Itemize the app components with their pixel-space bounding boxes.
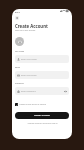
- button[interactable]: Enter your email: [15, 71, 69, 79]
- staticText: Password: [15, 82, 24, 85]
- button[interactable]: Add profile photo: [15, 37, 24, 46]
- staticText: Email: [15, 66, 20, 69]
- button[interactable]: Create Account: [15, 112, 69, 119]
- staticText: Full Name: [15, 50, 25, 53]
- staticText: Create Account: [34, 114, 50, 117]
- button[interactable]: Enter password: [15, 87, 69, 95]
- staticText: Enter your name: [21, 58, 37, 61]
- staticText: Sign up to get started: [15, 29, 36, 32]
- staticText: Already have an account? Log in: [27, 122, 58, 125]
- staticText: Create Account: [15, 23, 48, 29]
- button[interactable]: Back: [15, 16, 19, 20]
- staticText: Enter your email: [21, 74, 37, 77]
- staticText: Enter password: [21, 90, 36, 93]
- staticText: 9:41: [15, 10, 20, 13]
- button[interactable]: Already have an account? Log in: [15, 122, 69, 125]
- button[interactable]: Show password: [64, 90, 67, 93]
- button[interactable]: I agree to the Terms of Service: [15, 103, 46, 106]
- staticText: I agree to the Terms of Service: [19, 103, 46, 106]
- button[interactable]: Enter your name: [15, 55, 69, 63]
